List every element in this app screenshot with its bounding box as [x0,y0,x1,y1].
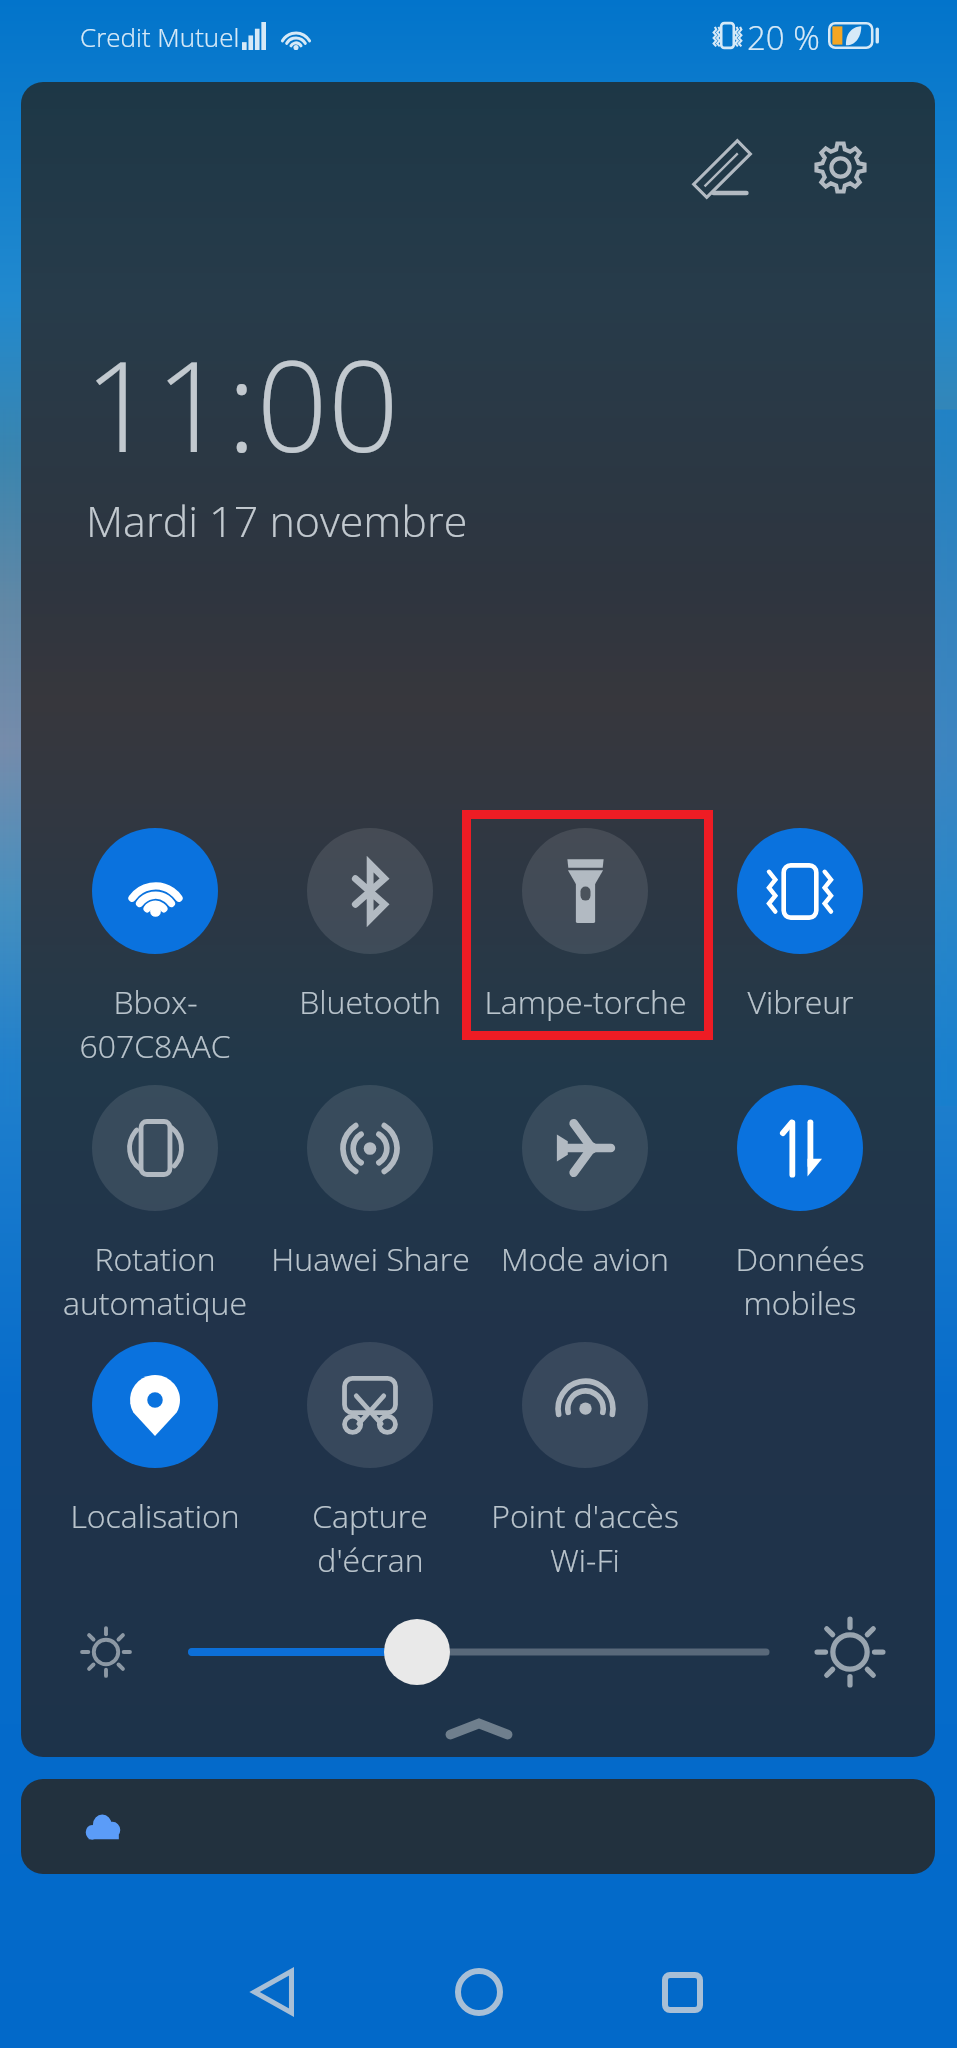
button[interactable]: Données [693,1085,907,1325]
button[interactable]: Vibreur [693,828,907,1024]
button[interactable]: Brightness [384,1619,450,1685]
staticText: 11:00 [84,318,400,488]
staticText: Lampe-torche [484,980,687,1024]
button[interactable]: Raise brightness [802,1612,898,1692]
button[interactable]: Settings [794,121,886,213]
button[interactable]: Localisation [48,1342,262,1538]
staticText: automatique [63,1281,247,1325]
staticText: d'écran [317,1538,424,1582]
button[interactable]: Huawei Share [263,1085,477,1281]
button[interactable]: Recents [612,1922,752,2048]
button[interactable]: Rotation [48,1085,262,1325]
staticText: Wi-Fi [550,1538,620,1582]
staticText: Credit Mutuel [80,19,240,54]
staticText: Rotation [94,1237,216,1281]
button[interactable]: Home [409,1922,549,2048]
staticText: Mode avion [501,1237,669,1281]
button[interactable]: Point d'accès [478,1342,692,1582]
staticText: Capture [312,1494,428,1538]
button[interactable]: Lampe-torche [478,828,692,1024]
staticText: Bbox- [113,980,198,1024]
button[interactable]: Capture [263,1342,477,1582]
staticText: Bluetooth [299,980,441,1024]
staticText: Données [735,1237,865,1281]
staticText: 20 % [747,15,820,60]
button[interactable]: Bluetooth [263,828,477,1024]
staticText: Vibreur [747,980,854,1024]
staticText: Huawei Share [271,1237,470,1281]
button[interactable]: Back [203,1922,343,2048]
staticText: Localisation [70,1494,240,1538]
button[interactable]: Bbox- [48,828,262,1068]
button[interactable]: Lower brightness [58,1612,154,1692]
staticText: Point d'accès [491,1494,679,1538]
staticText: mobiles [743,1281,857,1325]
staticText: 607C8AAC [79,1024,231,1068]
button[interactable]: Edit quick settings [678,122,770,214]
button[interactable] [21,1779,935,1874]
staticText: Mardi 17 novembre [86,491,468,550]
button[interactable]: Mode avion [478,1085,692,1281]
